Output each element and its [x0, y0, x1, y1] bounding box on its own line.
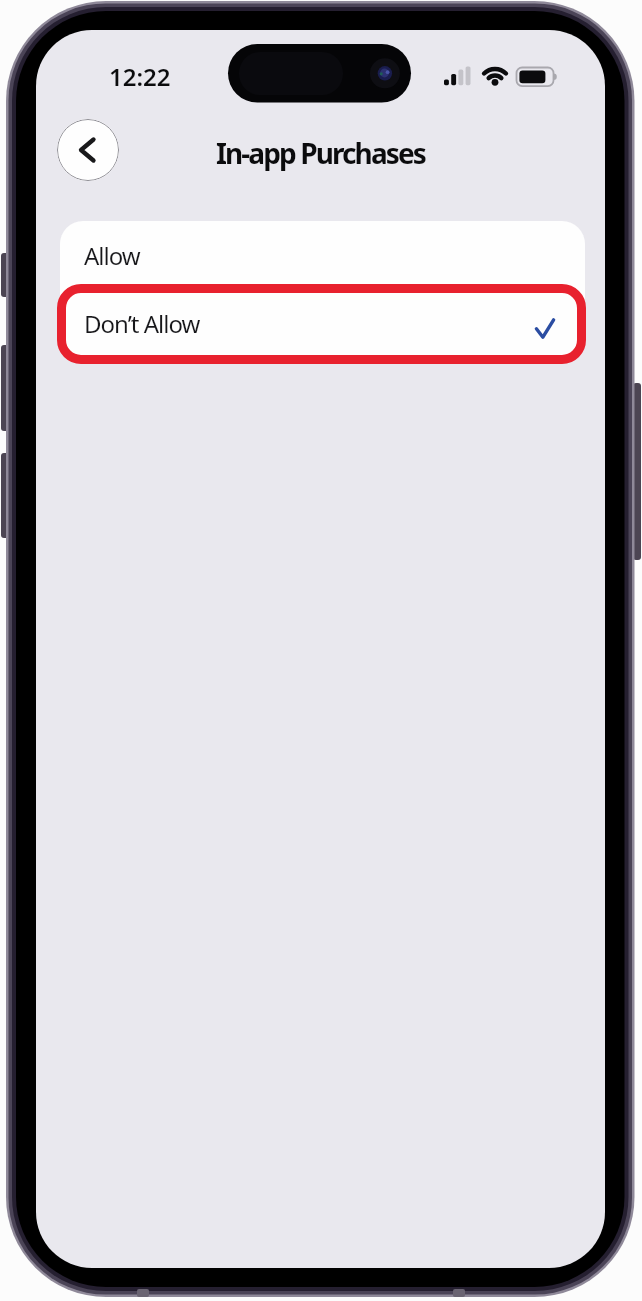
staticText: 12:22 — [109, 60, 171, 93]
staticText: Allow — [84, 239, 140, 272]
staticText: In-app Purchases — [216, 134, 425, 172]
button[interactable] — [57, 119, 119, 181]
staticText: Don’t Allow — [84, 307, 200, 340]
button[interactable]: Don’t Allow — [60, 289, 585, 358]
button[interactable]: Allow — [60, 221, 585, 289]
